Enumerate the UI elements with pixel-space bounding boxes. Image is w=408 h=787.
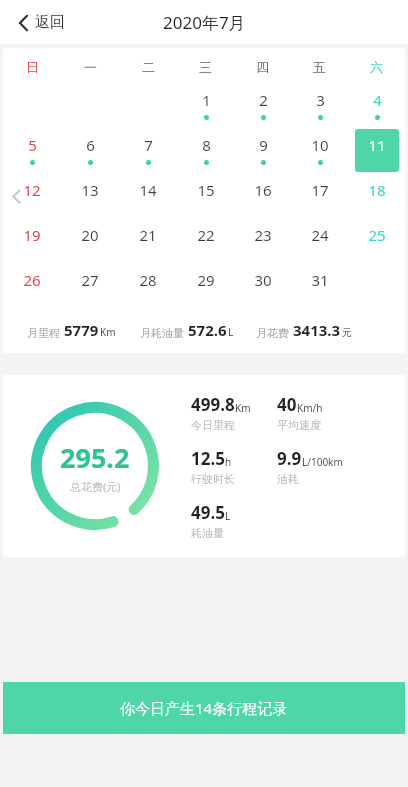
staticText: 六 [370,59,383,75]
staticText: 2020年7月 [163,11,246,34]
staticText: 11 [368,135,386,155]
other: Previous month [12,189,21,204]
staticText: 499.8 [191,393,235,416]
staticText: 一 [84,59,97,75]
staticText: 今日里程 [191,418,235,432]
staticText: 25 [368,225,386,245]
staticText: 总花费(元) [70,479,121,494]
staticText: 13 [81,180,99,200]
staticText: 5779 [64,320,99,340]
button[interactable]: 6 [68,129,112,172]
staticText: 31 [311,270,329,290]
staticText: 22 [197,225,215,245]
staticText: 28 [139,270,157,290]
button[interactable]: 18 [355,174,399,217]
staticText: 9 [259,135,268,155]
button[interactable]: 16 [241,174,285,217]
staticText: 16 [254,180,272,200]
button[interactable]: 你今日产生14条行程记录 [3,682,405,734]
button[interactable]: 22 [184,219,228,262]
staticText: 返回 [35,13,65,32]
staticText: 月里程 [27,326,60,340]
staticText: 17 [311,180,329,200]
staticText: 18 [368,180,386,200]
button[interactable]: 5 [10,129,54,172]
staticText: 295.2 [60,439,130,476]
staticText: 572.6 [188,320,227,340]
staticText: L [225,509,231,523]
button[interactable]: 3 [298,84,342,127]
staticText: 4 [373,90,382,110]
staticText: 平均速度 [277,418,321,432]
staticText: 耗油量 [191,526,224,540]
button[interactable]: 27 [68,264,112,307]
staticText: 月耗油量 [140,326,184,340]
staticText: 26 [23,270,41,290]
staticText: 30 [254,270,272,290]
button[interactable]: 1 [184,84,228,127]
button[interactable]: 31 [298,264,342,307]
button[interactable]: 21 [126,219,170,262]
staticText: 19 [23,225,41,245]
staticText: 5 [28,135,37,155]
button[interactable]: 7 [126,129,170,172]
staticText: 五 [313,59,326,75]
button[interactable]: 13 [68,174,112,217]
staticText: 三 [199,59,212,75]
staticText: 油耗 [277,472,299,486]
staticText: 月花费 [256,326,289,340]
button[interactable]: 15 [184,174,228,217]
button[interactable]: 9 [241,129,285,172]
button[interactable]: 20 [68,219,112,262]
staticText: Km/h [297,401,323,415]
button[interactable]: 23 [241,219,285,262]
button[interactable]: 26 [10,264,54,307]
staticText: 你今日产生14条行程记录 [120,698,288,718]
button[interactable]: 11 [355,129,399,172]
button[interactable]: 25 [355,219,399,262]
staticText: 40 [277,393,297,416]
button[interactable]: 14 [126,174,170,217]
button[interactable]: 10 [298,129,342,172]
staticText: 二 [142,59,155,75]
staticText: 12 [23,180,41,200]
staticText: Km [100,325,116,339]
staticText: 元 [342,326,352,339]
button[interactable]: 24 [298,219,342,262]
button[interactable]: 30 [241,264,285,307]
staticText: h [225,455,232,469]
staticText: 23 [254,225,272,245]
staticText: 2 [259,90,268,110]
staticText: 10 [311,135,329,155]
staticText: L [228,325,234,339]
staticText: 12.5 [191,447,225,470]
button[interactable]: 28 [126,264,170,307]
button[interactable]: 返回 [14,9,69,36]
staticText: 日 [26,59,39,75]
staticText: 3413.3 [293,320,341,340]
staticText: L/100km [302,455,343,469]
button[interactable]: 12 [10,174,54,217]
staticText: 20 [81,225,99,245]
button[interactable]: 8 [184,129,228,172]
staticText: 9.9 [277,447,302,470]
staticText: 27 [81,270,99,290]
staticText: Km [235,401,251,415]
staticText: 四 [256,59,269,75]
staticText: 行驶时长 [191,472,235,486]
button[interactable]: 17 [298,174,342,217]
staticText: 21 [139,225,157,245]
staticText: 14 [139,180,157,200]
staticText: 8 [202,135,211,155]
button[interactable]: 29 [184,264,228,307]
staticText: 3 [316,90,325,110]
staticText: 7 [144,135,153,155]
button[interactable]: 2 [241,84,285,127]
staticText: 15 [197,180,215,200]
staticText: 6 [86,135,95,155]
staticText: 24 [311,225,329,245]
button[interactable]: 4 [355,84,399,127]
button[interactable]: 19 [10,219,54,262]
staticText: 29 [197,270,215,290]
staticText: 49.5 [191,501,225,524]
